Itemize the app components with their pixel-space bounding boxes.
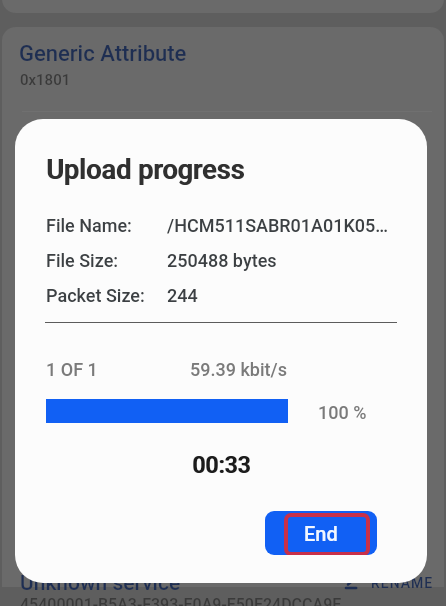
staticText: Upload progress: [46, 154, 245, 186]
staticText: 00:33: [193, 452, 252, 479]
staticText: 250488 bytes: [167, 250, 277, 271]
staticText: File Size:: [46, 250, 119, 271]
staticText: 00:33: [192, 452, 251, 479]
staticText: 244: [167, 285, 198, 306]
staticText: 0x1801: [20, 71, 71, 89]
staticText: File Name:: [46, 215, 132, 236]
button[interactable]: End: [265, 511, 377, 555]
staticText: RENAME: [371, 575, 434, 591]
staticText: 1 OF 1: [46, 359, 98, 380]
other: Rename: [345, 574, 363, 592]
staticText: Packet Size:: [46, 285, 145, 306]
staticText: /HCM511SABR01A01K05…: [167, 215, 389, 236]
staticText: 100 %: [318, 402, 367, 423]
staticText: Unknown service: [20, 571, 181, 596]
staticText: 59.39 kbit/s: [190, 359, 287, 380]
staticText: Generic Attribute: [19, 41, 187, 67]
button[interactable]: Rename: [345, 574, 434, 592]
staticText: End: [304, 522, 338, 545]
staticText: 45400001-B5A3-F393-E0A9-E50E24DCCA9E: [20, 595, 342, 606]
staticText: Upload progress: [47, 154, 246, 186]
